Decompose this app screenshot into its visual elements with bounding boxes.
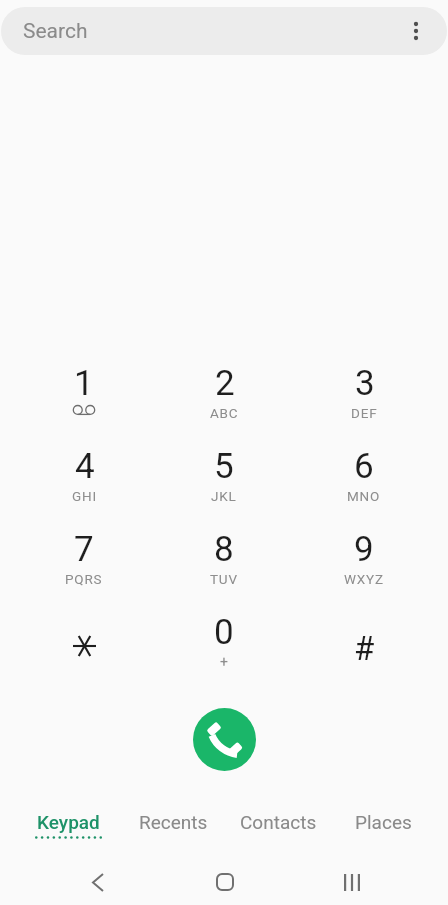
button[interactable]: # [294,612,434,695]
staticText: PQRS [65,571,103,587]
button[interactable]: Back [70,859,126,905]
button[interactable]: 7 [14,529,154,612]
staticText: Recents [139,811,208,833]
button[interactable]: Home [197,859,253,905]
button[interactable]: 0 [154,612,294,695]
staticText: + [220,654,228,670]
button[interactable]: 2 [154,363,294,446]
button[interactable]: More options [399,14,433,48]
button[interactable]: Search [1,7,447,55]
button[interactable]: 4 [14,446,154,529]
staticText: 4 [75,446,95,487]
button[interactable]: 6 [294,446,434,529]
staticText: 1 [74,363,94,404]
staticText: ABC [210,405,239,421]
staticText: Contacts [240,811,317,833]
staticText: 3 [355,363,375,404]
staticText: 6 [354,446,374,487]
staticText: Search [23,19,88,44]
staticText: Places [355,811,412,833]
staticText: TUV [210,571,238,587]
staticText: 2 [215,363,235,404]
button[interactable]: 9 [294,529,434,612]
staticText: 5 [214,446,234,487]
button[interactable] [14,612,154,695]
staticText: 7 [74,529,94,570]
staticText: Keypad [37,811,100,833]
button[interactable]: 3 [294,363,434,446]
button[interactable]: Contacts [226,811,331,851]
button[interactable]: 8 [154,529,294,612]
staticText: 9 [354,529,374,570]
staticText: DEF [351,405,378,421]
button[interactable]: Recents [121,811,226,851]
button[interactable]: Recent apps [324,859,380,905]
button[interactable]: Keypad [15,811,121,851]
button[interactable]: Call [193,708,256,771]
staticText: 0 [214,612,234,653]
staticText: # [354,629,375,668]
button[interactable]: 1 [14,363,154,446]
staticText: WXYZ [344,571,384,587]
button[interactable]: Places [331,811,436,851]
button[interactable]: 5 [154,446,294,529]
staticText: GHI [72,488,97,504]
staticText: MNO [347,488,381,504]
staticText: 8 [214,529,234,570]
staticText: JKL [211,488,237,504]
